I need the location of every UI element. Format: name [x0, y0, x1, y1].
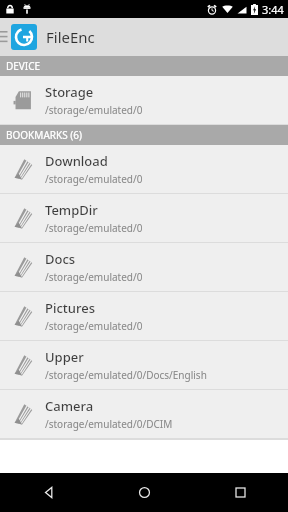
staticText: BOOKMARKS (6) — [6, 128, 82, 142]
staticText: TempDir — [45, 201, 98, 219]
button[interactable]: Camera — [0, 390, 288, 438]
button[interactable]: Storage — [0, 76, 288, 124]
staticText: Upper — [45, 348, 84, 366]
button[interactable]: Pictures — [0, 292, 288, 340]
button[interactable]: Home — [96, 473, 192, 512]
staticText: /storage/emulated/0 — [45, 221, 143, 235]
staticText: /storage/emulated/0/Docs/English — [45, 368, 207, 382]
button[interactable]: Open navigation drawer — [0, 18, 10, 56]
button[interactable]: Upper — [0, 341, 288, 389]
staticText: /storage/emulated/0 — [45, 172, 143, 186]
button[interactable]: FileEnc app icon — [11, 24, 37, 50]
staticText: Storage — [45, 83, 94, 101]
button[interactable]: Docs — [0, 243, 288, 291]
staticText: 3:44 — [262, 2, 284, 17]
staticText: Docs — [45, 250, 76, 268]
staticText: Download — [45, 152, 108, 170]
staticText: /storage/emulated/0 — [45, 319, 143, 333]
button[interactable]: TempDir — [0, 194, 288, 242]
button[interactable]: Back — [0, 473, 96, 512]
staticText: /storage/emulated/0 — [45, 103, 143, 117]
staticText: /storage/emulated/0 — [45, 270, 143, 284]
staticText: Pictures — [45, 299, 95, 317]
staticText: FileEnc — [46, 27, 95, 47]
staticText: Camera — [45, 397, 94, 415]
staticText: /storage/emulated/0/DCIM — [45, 417, 173, 431]
button[interactable]: Download — [0, 145, 288, 193]
button[interactable]: Recent apps — [192, 473, 288, 512]
staticText: DEVICE — [6, 59, 41, 73]
